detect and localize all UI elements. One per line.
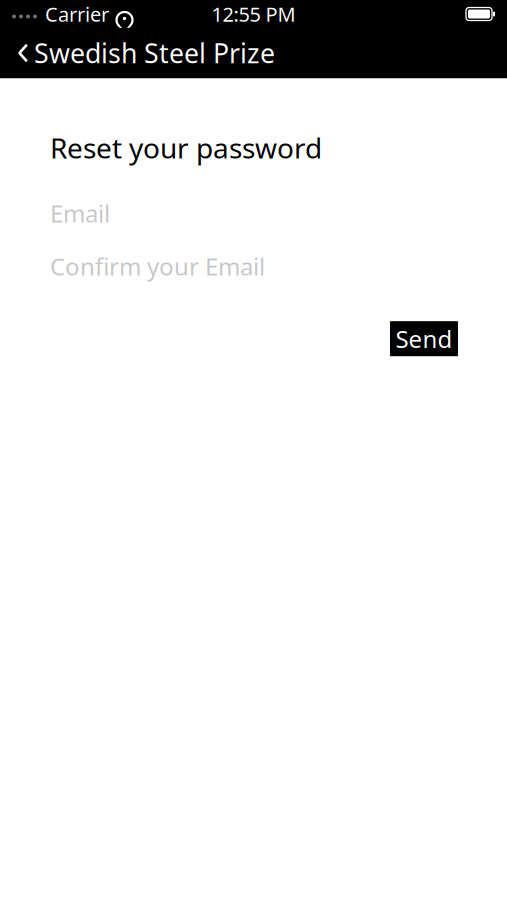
staticText: Swedish Steel Prize	[34, 35, 275, 71]
button[interactable]: Confirm your Email	[50, 249, 458, 283]
staticText: 12:55 PM	[211, 1, 295, 27]
button[interactable]: Send	[390, 321, 458, 356]
button[interactable]: Email	[50, 196, 458, 230]
staticText: Reset your password	[50, 129, 322, 166]
staticText: Email	[50, 197, 110, 229]
staticText: Carrier	[45, 1, 109, 27]
staticText: Confirm your Email	[50, 250, 265, 282]
staticText: Send	[395, 323, 452, 355]
button[interactable]: Swedish Steel Prize	[0, 28, 285, 78]
